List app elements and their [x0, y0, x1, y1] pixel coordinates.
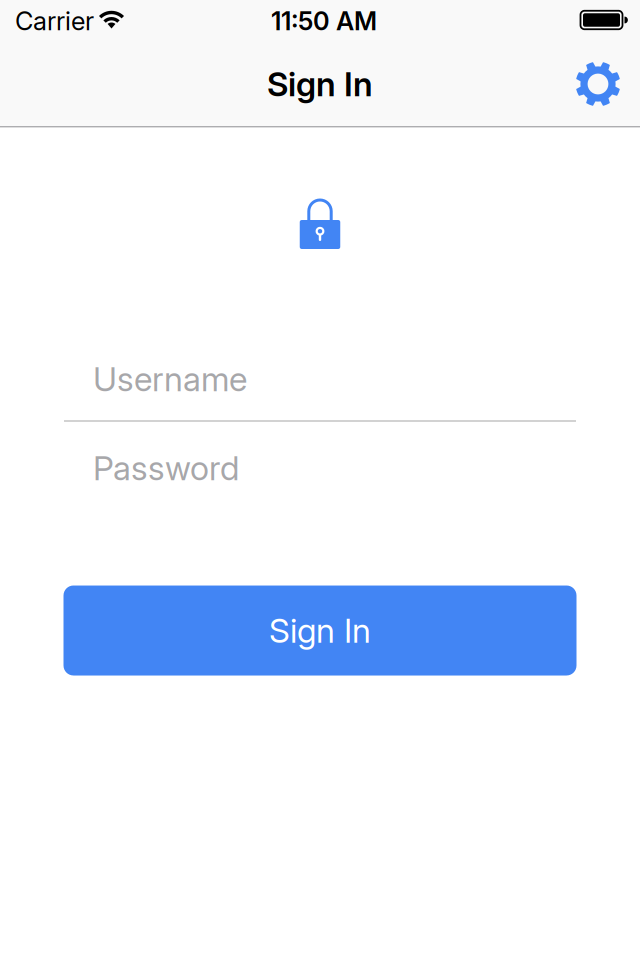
button[interactable]: Settings	[575, 61, 621, 107]
button[interactable]: Username	[64, 348, 576, 410]
staticText: Password	[93, 448, 239, 488]
button[interactable]: Password	[64, 437, 576, 499]
button[interactable]: Sign In	[63, 585, 576, 675]
staticText: Sign In	[267, 64, 373, 104]
staticText: Username	[93, 359, 247, 399]
staticText: 11:50 AM	[271, 6, 377, 36]
staticText: Carrier	[15, 6, 94, 36]
staticText: Sign In	[269, 611, 371, 650]
